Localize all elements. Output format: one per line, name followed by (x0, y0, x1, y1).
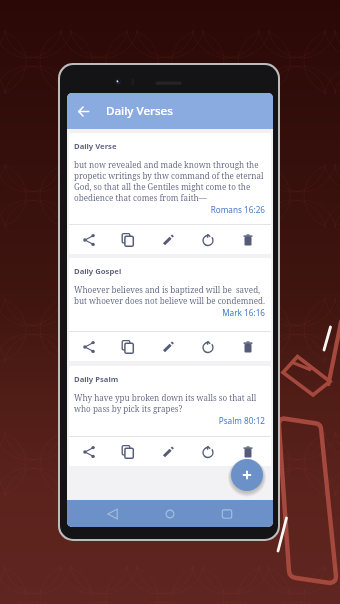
button[interactable]: Share (69, 225, 108, 254)
button[interactable]: Delete (228, 437, 268, 466)
staticText: Psalm 80:12 (69, 415, 265, 426)
button[interactable]: Back (67, 93, 273, 129)
button[interactable]: Edit (148, 437, 188, 466)
button[interactable]: Edit (148, 332, 188, 361)
button[interactable]: Add (231, 459, 263, 491)
button[interactable]: Share (69, 332, 108, 361)
button[interactable]: Delete (228, 225, 268, 254)
button[interactable]: Delete (228, 332, 268, 361)
button[interactable]: Back (85, 500, 141, 527)
staticText: but now revealed and made known through … (74, 159, 269, 203)
button[interactable]: Refresh (188, 332, 228, 361)
staticText: Mark 16:16 (69, 307, 265, 318)
button[interactable]: Recents (198, 500, 255, 527)
button[interactable]: Share (69, 437, 108, 466)
staticText: Daily Gospel (74, 266, 122, 276)
staticText: Daily Verses (106, 103, 173, 119)
staticText: Romans 16:26 (69, 204, 265, 215)
button[interactable]: Back (70, 98, 96, 124)
staticText: Why have ypu broken down its walls so th… (74, 392, 269, 414)
button[interactable]: Copy (108, 225, 148, 254)
button[interactable]: Refresh (188, 437, 228, 466)
button[interactable]: Edit (148, 225, 188, 254)
button[interactable]: Copy (108, 437, 148, 466)
button[interactable]: Copy (108, 332, 148, 361)
staticText: Whoever believes and is baptized will be… (74, 284, 269, 306)
staticText: Daily Verse (74, 141, 117, 151)
button[interactable]: Refresh (188, 225, 228, 254)
button[interactable]: Home (141, 500, 198, 527)
staticText: Daily Psalm (74, 374, 119, 384)
